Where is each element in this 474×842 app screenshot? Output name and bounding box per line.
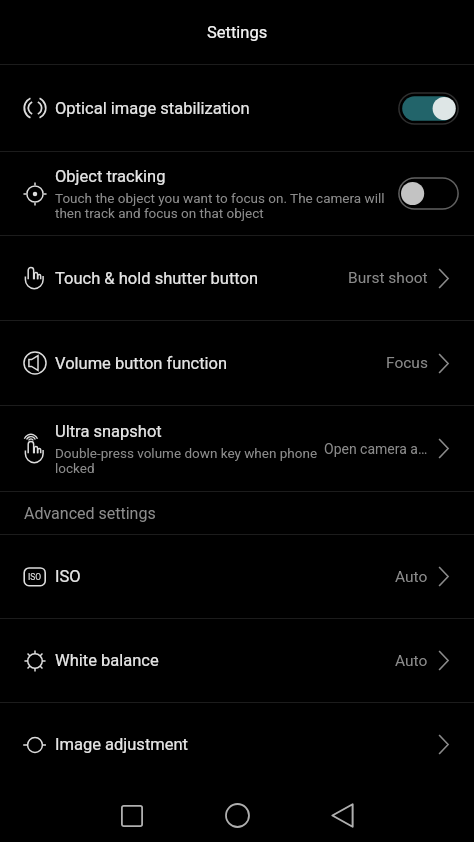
- button[interactable]: Optical image stabilization: [0, 65, 474, 151]
- staticText: Advanced settings: [24, 504, 156, 523]
- staticText: ISO: [55, 567, 81, 586]
- button[interactable]: Image adjustment: [0, 703, 474, 786]
- staticText: Focus: [386, 354, 428, 372]
- staticText: Auto: [395, 568, 428, 586]
- staticText: Touch the object you want to focus on. T…: [55, 190, 392, 221]
- button[interactable]: Object tracking: [0, 152, 474, 235]
- staticText: Settings: [207, 23, 268, 42]
- staticText: Touch & hold shutter button: [55, 269, 259, 288]
- staticText: White balance: [55, 651, 159, 670]
- staticText: Auto: [395, 652, 428, 670]
- staticText: Burst shoot: [348, 269, 428, 287]
- button[interactable]: Home: [202, 789, 272, 842]
- button[interactable]: Ultra snapshot: [0, 406, 474, 491]
- staticText: Object tracking: [55, 167, 166, 186]
- button[interactable]: Touch & hold shutter button: [0, 236, 474, 320]
- button[interactable]: ISO: [0, 535, 474, 618]
- staticText: Image adjustment: [55, 735, 189, 754]
- staticText: ISO: [28, 572, 42, 582]
- staticText: Ultra snapshot: [55, 422, 162, 441]
- staticText: Volume button function: [55, 354, 228, 373]
- button[interactable]: White balance: [0, 619, 474, 702]
- button[interactable]: Back: [307, 789, 377, 842]
- staticText: Double-press volume down key when phone …: [55, 445, 324, 476]
- button[interactable]: Recent apps: [97, 789, 167, 842]
- button[interactable]: Volume button function: [0, 321, 474, 405]
- staticText: Open camera a…: [324, 441, 428, 457]
- staticText: Optical image stabilization: [55, 99, 250, 118]
